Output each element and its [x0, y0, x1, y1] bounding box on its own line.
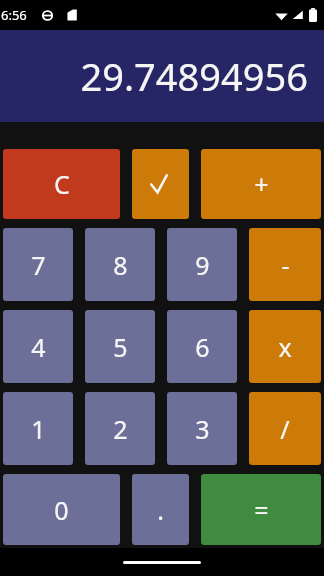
staticText: 9	[195, 248, 210, 282]
staticText: 2	[113, 412, 128, 446]
button[interactable]: 5	[85, 310, 155, 383]
staticText: 4	[31, 330, 46, 364]
button[interactable]: -	[249, 228, 321, 301]
staticText: +	[254, 167, 269, 201]
staticText: 5	[113, 330, 128, 364]
button[interactable]: 4	[3, 310, 73, 383]
button[interactable]: 6	[167, 310, 237, 383]
staticText: x	[278, 330, 292, 364]
button[interactable]: 3	[167, 392, 237, 465]
button[interactable]: 0	[3, 474, 120, 545]
button[interactable]: Square root	[132, 149, 189, 219]
staticText: 6:56	[1, 6, 27, 24]
staticText: -	[281, 248, 290, 282]
button[interactable]: +	[201, 149, 321, 219]
staticText: C	[54, 167, 70, 201]
staticText: 0	[54, 493, 69, 527]
button[interactable]: 1	[3, 392, 73, 465]
button[interactable]: x	[249, 310, 321, 383]
button[interactable]: C	[3, 149, 120, 219]
staticText: 3	[195, 412, 210, 446]
staticText: 7	[31, 248, 46, 282]
button[interactable]: 7	[3, 228, 73, 301]
staticText: 8	[113, 248, 128, 282]
button[interactable]: =	[201, 474, 321, 545]
staticText: .	[157, 493, 164, 527]
button[interactable]: 2	[85, 392, 155, 465]
staticText: =	[254, 493, 269, 527]
button[interactable]: .	[132, 474, 189, 545]
button[interactable]: /	[249, 392, 321, 465]
button[interactable]: 9	[167, 228, 237, 301]
staticText: 1	[31, 412, 46, 446]
staticText: /	[280, 412, 290, 446]
button[interactable]: 8	[85, 228, 155, 301]
staticText: 6	[195, 330, 210, 364]
staticText: 29.74894956	[80, 50, 308, 102]
